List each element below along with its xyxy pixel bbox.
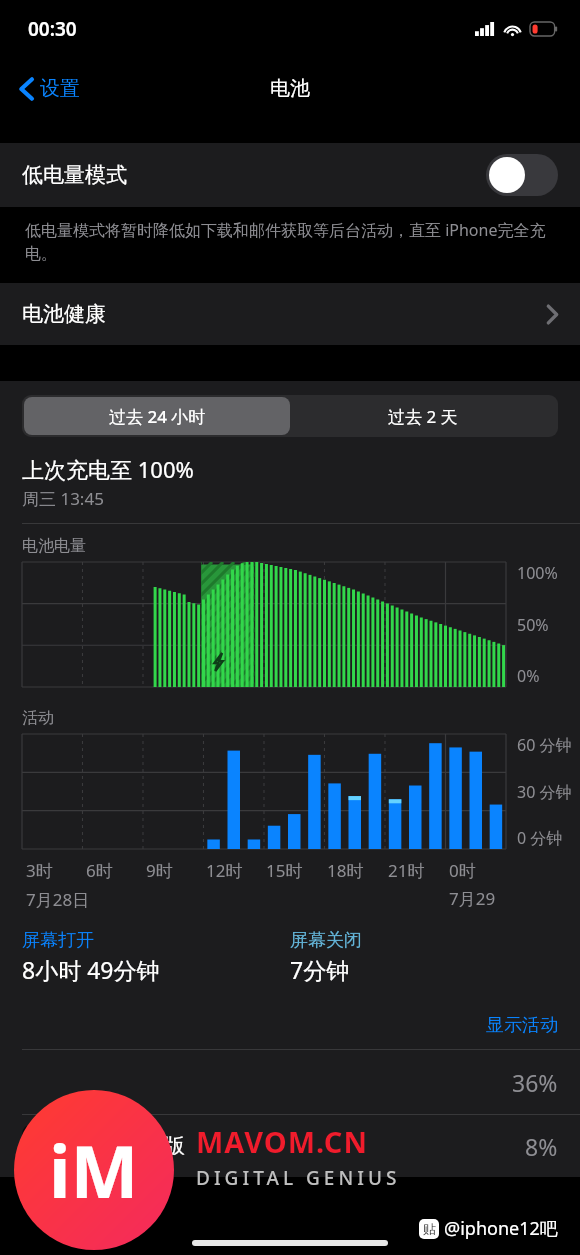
staticText: 显示活动 (486, 1014, 558, 1037)
staticText: 过去 24 小时 (109, 405, 206, 428)
button[interactable]: 低电量模式 (0, 143, 580, 207)
staticText: iM (49, 1121, 139, 1219)
staticText: 00:30 (28, 16, 77, 42)
staticText: 60 分钟 (517, 734, 572, 756)
staticText: 50% (517, 614, 549, 636)
staticText: 6时 (86, 859, 113, 882)
staticText: 低电量模式将暂时降低如下载和邮件获取等后台活动，直至 iPhone完全充电。 (25, 219, 555, 264)
staticText: 过去 2 天 (388, 405, 458, 428)
staticText: 7月29日 (449, 887, 506, 915)
staticText: 0% (517, 665, 540, 687)
staticText: 30 分钟 (517, 781, 572, 803)
staticText: 12时 (206, 859, 243, 882)
staticText: 0时 (449, 859, 476, 882)
staticText: 21时 (388, 859, 425, 882)
staticText: 电池电量 (22, 536, 86, 556)
staticText: 8小时 49分钟 (22, 954, 160, 985)
button[interactable]: 抖音极速版 (0, 1115, 580, 1177)
button[interactable] (486, 154, 558, 196)
staticText: @iphone12吧 (444, 1216, 558, 1241)
staticText: 贴 (423, 1221, 436, 1237)
staticText: 低电量模式 (22, 162, 127, 188)
button[interactable]: 过去 24 小时 (24, 397, 290, 435)
staticText: 设置 (40, 76, 80, 101)
staticText: 活动 (22, 708, 54, 728)
staticText: 100% (517, 562, 558, 584)
staticText: 屏幕关闭 (290, 929, 362, 952)
button[interactable]: 设置 (14, 70, 86, 107)
staticText: 8% (525, 1131, 558, 1162)
staticText: DIGITAL GENIUS (196, 1165, 401, 1191)
staticText: 0 分钟 (517, 827, 563, 849)
staticText: 电池健康 (22, 301, 106, 327)
staticText: 18时 (327, 859, 364, 882)
staticText: 周三 13:45 (22, 487, 104, 510)
button[interactable]: 电池健康 (0, 283, 580, 345)
button[interactable]: 过去 2 天 (290, 397, 556, 435)
staticText: 7月28日 (26, 888, 90, 911)
staticText: 电池 (270, 76, 310, 101)
staticText: 3时 (26, 859, 53, 882)
button[interactable]: 显示活动 (0, 1001, 580, 1049)
staticText: 15时 (266, 859, 303, 882)
staticText: 抖音极速版 (80, 1133, 185, 1159)
staticText: 屏幕打开 (22, 929, 94, 952)
staticText: 7分钟 (290, 954, 350, 985)
staticText: 上次充电至 100% (22, 454, 194, 484)
staticText: 9时 (146, 859, 173, 882)
staticText: 36% (512, 1067, 558, 1098)
staticText: MAVOM.CN (196, 1122, 368, 1161)
button[interactable]: 36% (0, 1050, 580, 1114)
